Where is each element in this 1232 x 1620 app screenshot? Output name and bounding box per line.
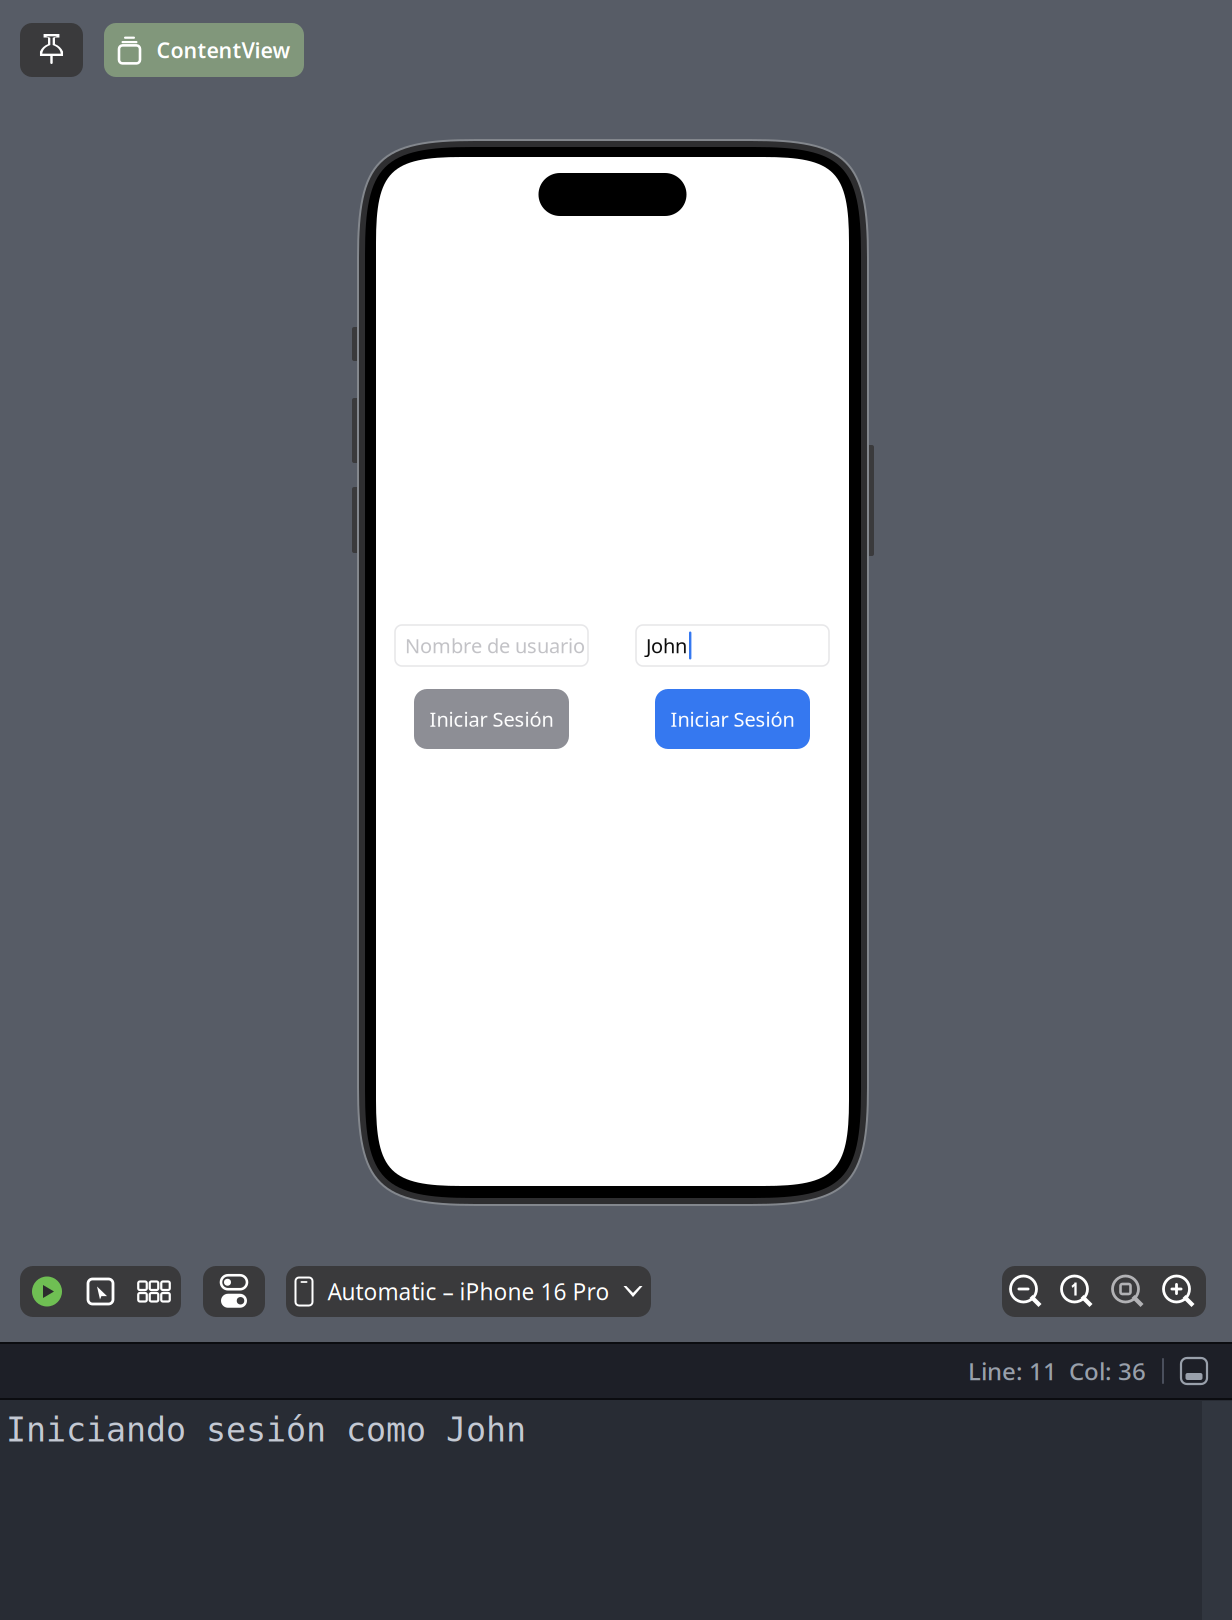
button[interactable]: Zoom controls xyxy=(1002,1266,1206,1317)
staticText: Iniciar Sesión xyxy=(670,706,794,732)
button[interactable]: Toggle console xyxy=(1180,1357,1208,1385)
staticText: Iniciar Sesión xyxy=(429,706,553,732)
staticText: Automatic – iPhone 16 Pro xyxy=(327,1276,609,1306)
staticText: Nombre de usuario xyxy=(405,632,585,659)
button[interactable]: Pin preview xyxy=(20,23,83,77)
staticText: ContentView xyxy=(156,36,290,64)
button[interactable]: Preview controls xyxy=(20,1266,181,1317)
button[interactable]: Select device xyxy=(286,1266,651,1317)
button[interactable]: Iniciar Sesión xyxy=(655,689,810,749)
button[interactable]: Iniciar Sesión xyxy=(414,689,569,749)
button[interactable]: ContentView xyxy=(104,23,304,77)
button[interactable]: Preview settings xyxy=(203,1266,265,1317)
staticText: Line: 11 Col: 36 xyxy=(968,1355,1146,1387)
staticText: Iniciando sesión como John xyxy=(6,1411,526,1449)
staticText: John xyxy=(646,632,687,659)
